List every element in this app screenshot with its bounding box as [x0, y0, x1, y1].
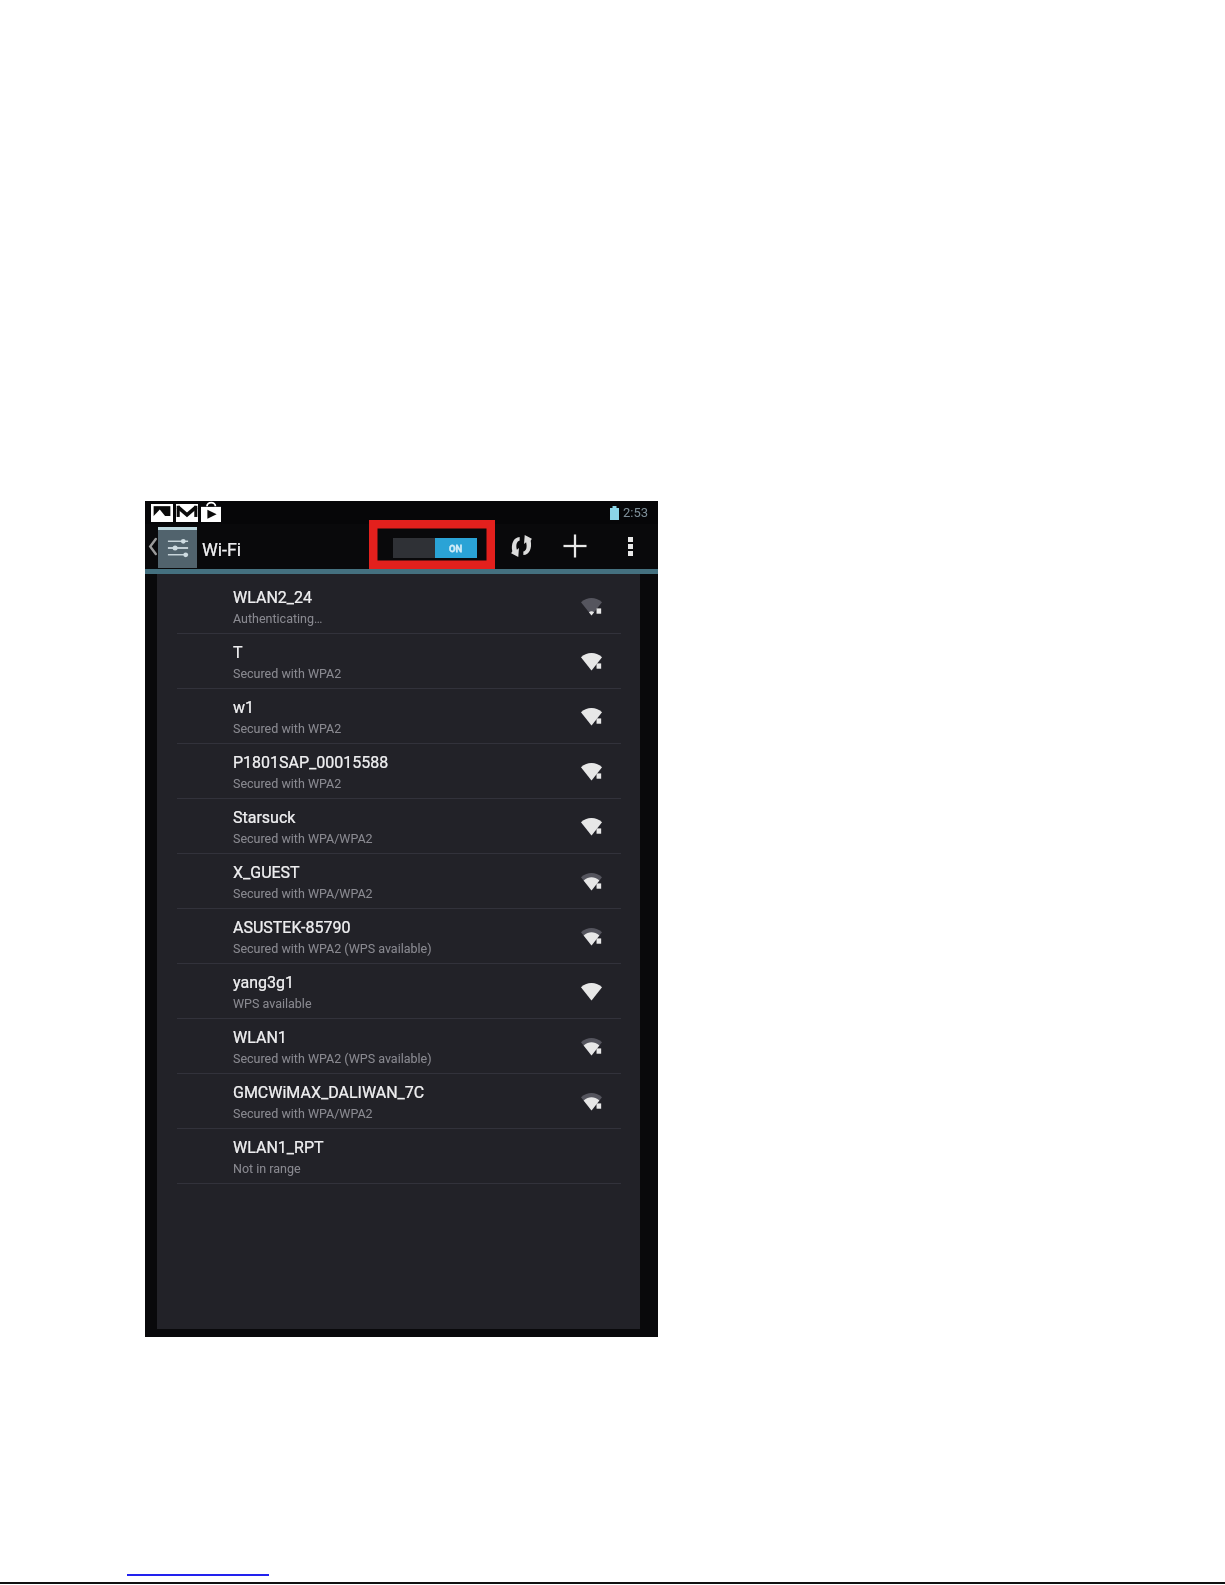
button[interactable]: Scan [503, 524, 539, 568]
staticText: T [233, 643, 243, 662]
staticText: yang3g1 [233, 973, 294, 992]
staticText: WLAN1 [233, 1028, 287, 1047]
button[interactable]: Add network [557, 524, 593, 568]
staticText: GMCWiMAX_DALIWAN_7C [233, 1083, 425, 1102]
button[interactable]: GMCWiMAX_DALIWAN_7C [157, 1074, 640, 1129]
button[interactable]: More options [615, 524, 645, 568]
staticText: P1801SAP_00015588 [233, 753, 389, 772]
staticText: ON [449, 543, 463, 554]
staticText: Secured with WPA2 [233, 666, 342, 681]
staticText: Starsuck [233, 808, 296, 827]
button[interactable]: P1801SAP_00015588 [157, 744, 640, 799]
staticText: ASUSTEK-85790 [233, 918, 351, 937]
staticText: Authenticating… [233, 611, 323, 626]
staticText: WLAN2_24 [233, 588, 313, 607]
staticText: WPS available [233, 996, 312, 1011]
button[interactable]: X_GUEST [157, 854, 640, 909]
button[interactable]: Starsuck [157, 799, 640, 854]
button[interactable]: ASUSTEK-85790 [157, 909, 640, 964]
staticText: Wi-Fi [202, 539, 242, 560]
staticText: Secured with WPA/WPA2 [233, 1106, 373, 1121]
staticText: X_GUEST [233, 863, 300, 882]
button[interactable]: WLAN1 [157, 1019, 640, 1074]
button[interactable]: T [157, 634, 640, 689]
staticText: 2:53 [623, 505, 649, 520]
staticText: w1 [233, 698, 255, 717]
staticText: Secured with WPA2 [233, 721, 342, 736]
staticText: Secured with WPA/WPA2 [233, 831, 373, 846]
staticText: Not in range [233, 1161, 301, 1176]
staticText: Secured with WPA2 (WPS available) [233, 1051, 432, 1066]
button[interactable]: Back [146, 524, 160, 568]
button[interactable]: WLAN1_RPT [157, 1129, 640, 1184]
button[interactable]: WLAN2_24 [157, 579, 640, 634]
button[interactable]: Settings [158, 527, 197, 568]
staticText: WLAN1_RPT [233, 1138, 324, 1157]
button[interactable]: w1 [157, 689, 640, 744]
button[interactable]: yang3g1 [157, 964, 640, 1019]
button[interactable]: Wi-Fi on off toggle [393, 538, 477, 558]
staticText: Secured with WPA/WPA2 [233, 886, 373, 901]
staticText: Secured with WPA2 [233, 776, 342, 791]
staticText: Secured with WPA2 (WPS available) [233, 941, 432, 956]
